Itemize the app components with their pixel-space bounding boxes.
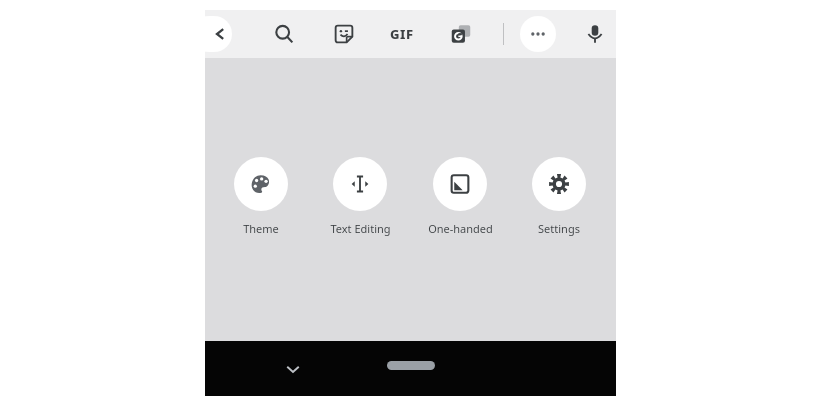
- staticText: Theme: [243, 221, 279, 236]
- staticText: Text Editing: [330, 221, 391, 236]
- button[interactable]: Hide keyboard: [275, 351, 311, 387]
- button[interactable]: Translate: [443, 16, 479, 52]
- button[interactable]: Voice input: [577, 16, 613, 52]
- button[interactable]: Text Editing: [318, 157, 402, 236]
- button[interactable]: Back: [191, 16, 232, 52]
- button[interactable]: More options: [520, 16, 556, 52]
- staticText: Settings: [538, 221, 580, 236]
- staticText: GIF: [390, 25, 414, 43]
- staticText: One-handed: [428, 221, 493, 236]
- button[interactable]: Search: [266, 16, 302, 52]
- button[interactable]: Theme: [219, 157, 303, 236]
- button[interactable]: Home: [387, 361, 435, 370]
- button[interactable]: Settings: [517, 157, 601, 236]
- button[interactable]: GIF: [384, 16, 420, 52]
- button[interactable]: Stickers: [326, 16, 362, 52]
- button[interactable]: One-handed: [418, 157, 502, 236]
